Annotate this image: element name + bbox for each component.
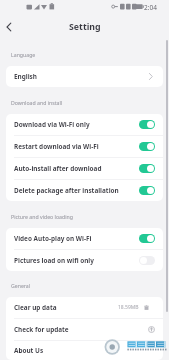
staticText: Auto-install after download [14,164,102,173]
staticText: Clear up data [14,303,57,312]
button[interactable]: Video Auto-play on Wi-Fi [6,228,163,249]
staticText: Check for update [14,325,69,334]
staticText: Download via Wi-Fi only [14,120,90,129]
button[interactable]: Check for update [6,319,163,340]
staticText: About Us [14,346,44,355]
staticText: English [14,72,37,81]
button[interactable]: English [6,66,163,87]
staticText: Restart download via Wi-Fi [14,142,99,151]
button[interactable]: Restart download via Wi-Fi [6,136,163,157]
button[interactable]: Auto-install after download [139,164,155,173]
button[interactable]: Auto-install after download [6,158,163,179]
other: Clear cache [143,304,150,311]
staticText: Language [11,51,36,58]
button[interactable]: About Us [6,341,163,360]
staticText: Video Auto-play on Wi-Fi [14,234,92,243]
button[interactable]: Pictures load on wifi only [6,250,163,271]
other: Check for update [148,326,155,333]
staticText: Download and install [11,99,63,106]
button[interactable]: Back [0,14,17,40]
staticText: Picture and video loading [11,213,73,220]
staticText: 18.59MB [118,304,139,311]
staticText: General [11,282,31,289]
button[interactable]: Download via Wi-Fi only [6,114,163,135]
staticText: Setting [69,21,101,33]
button[interactable]: Delete package after installation [139,186,155,195]
staticText: Pictures load on wifi only [14,256,94,265]
button[interactable]: Clear up data [6,297,163,318]
staticText: 2:04 [144,3,157,12]
button[interactable]: Delete package after installation [6,180,163,201]
button[interactable]: Pictures load on wifi only [139,256,155,265]
button[interactable]: Restart download via Wi-Fi [139,142,155,151]
other: Open English [146,72,155,81]
button[interactable]: Download via Wi-Fi only [139,120,155,129]
staticText: Delete package after installation [14,186,119,195]
button[interactable]: Video Auto-play on Wi-Fi [139,234,155,243]
